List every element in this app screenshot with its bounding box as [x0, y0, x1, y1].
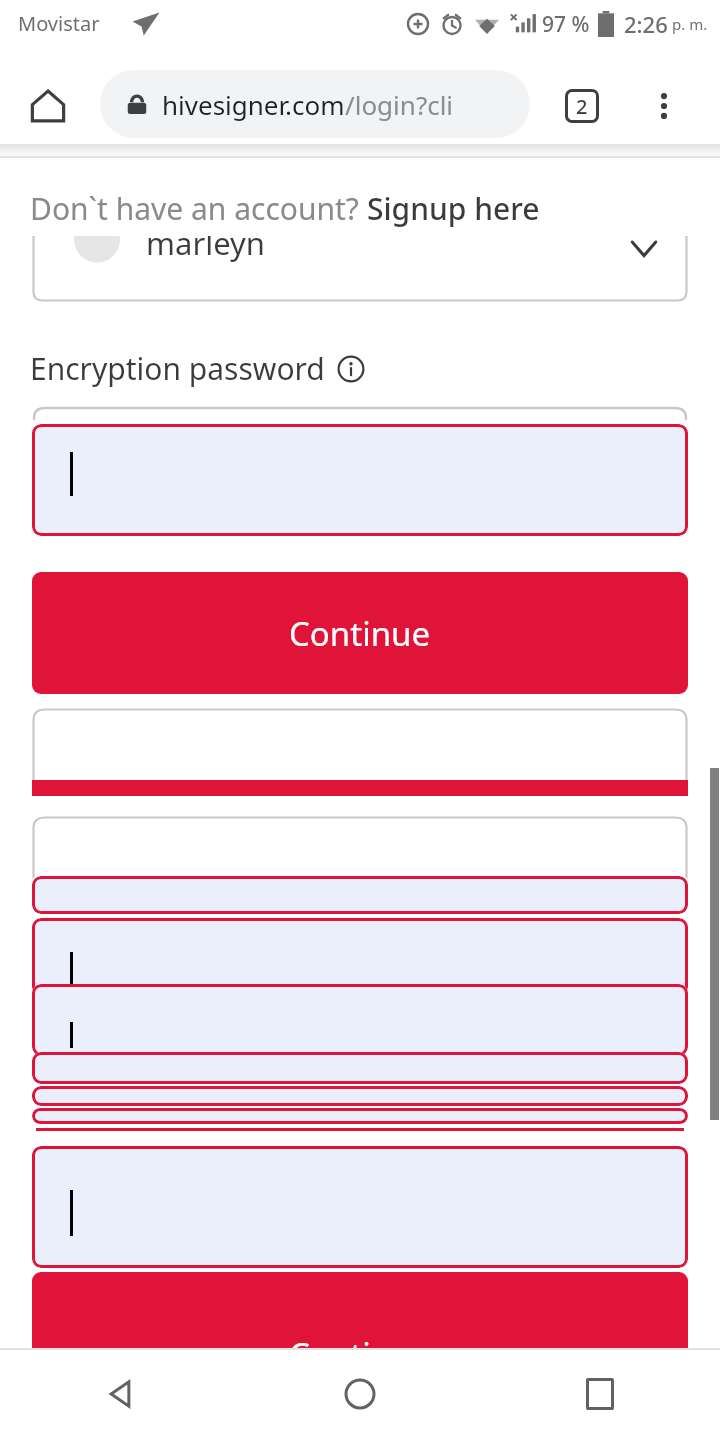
- button[interactable]: [32, 918, 688, 996]
- button[interactable]: More options: [634, 76, 694, 136]
- button[interactable]: [32, 1146, 688, 1268]
- staticText: p. m.: [672, 14, 708, 34]
- staticText: marleyn: [146, 236, 266, 264]
- staticText: hivesigner.com: [162, 87, 345, 122]
- button[interactable]: Continue: [32, 1272, 688, 1382]
- staticText: 2:26: [624, 9, 668, 39]
- staticText: Encryption password: [30, 348, 325, 389]
- button[interactable]: [32, 1052, 688, 1084]
- button[interactable]: Continue: [32, 572, 688, 694]
- button[interactable]: marleyn: [32, 236, 688, 302]
- button[interactable]: hivesigner.com: [100, 70, 530, 138]
- button[interactable]: Home: [240, 1348, 480, 1440]
- button[interactable]: [32, 984, 688, 1056]
- staticText: Signup here: [367, 188, 540, 229]
- button[interactable]: [32, 1086, 688, 1106]
- button[interactable]: [32, 876, 688, 914]
- button[interactable]: Recent apps: [480, 1348, 720, 1440]
- staticText: /login?cli: [345, 87, 454, 122]
- staticText: Continue: [289, 1332, 431, 1377]
- button[interactable]: Back: [0, 1348, 240, 1440]
- staticText: 97 %: [542, 10, 590, 39]
- button[interactable]: [32, 424, 688, 536]
- staticText: Don`t have an account?: [30, 188, 367, 229]
- button[interactable]: Add another account: [32, 816, 688, 878]
- staticText: Movistar: [18, 10, 100, 37]
- staticText: 2: [576, 93, 588, 120]
- button[interactable]: Home: [18, 76, 78, 136]
- button[interactable]: Tabs, 2 open: [552, 76, 612, 136]
- button[interactable]: [32, 1108, 688, 1124]
- button[interactable]: Info about encryption password: [335, 353, 367, 385]
- staticText: Continue: [289, 611, 431, 656]
- button[interactable]: Add another account: [32, 708, 688, 796]
- button[interactable]: Don`t have an account?: [30, 188, 540, 229]
